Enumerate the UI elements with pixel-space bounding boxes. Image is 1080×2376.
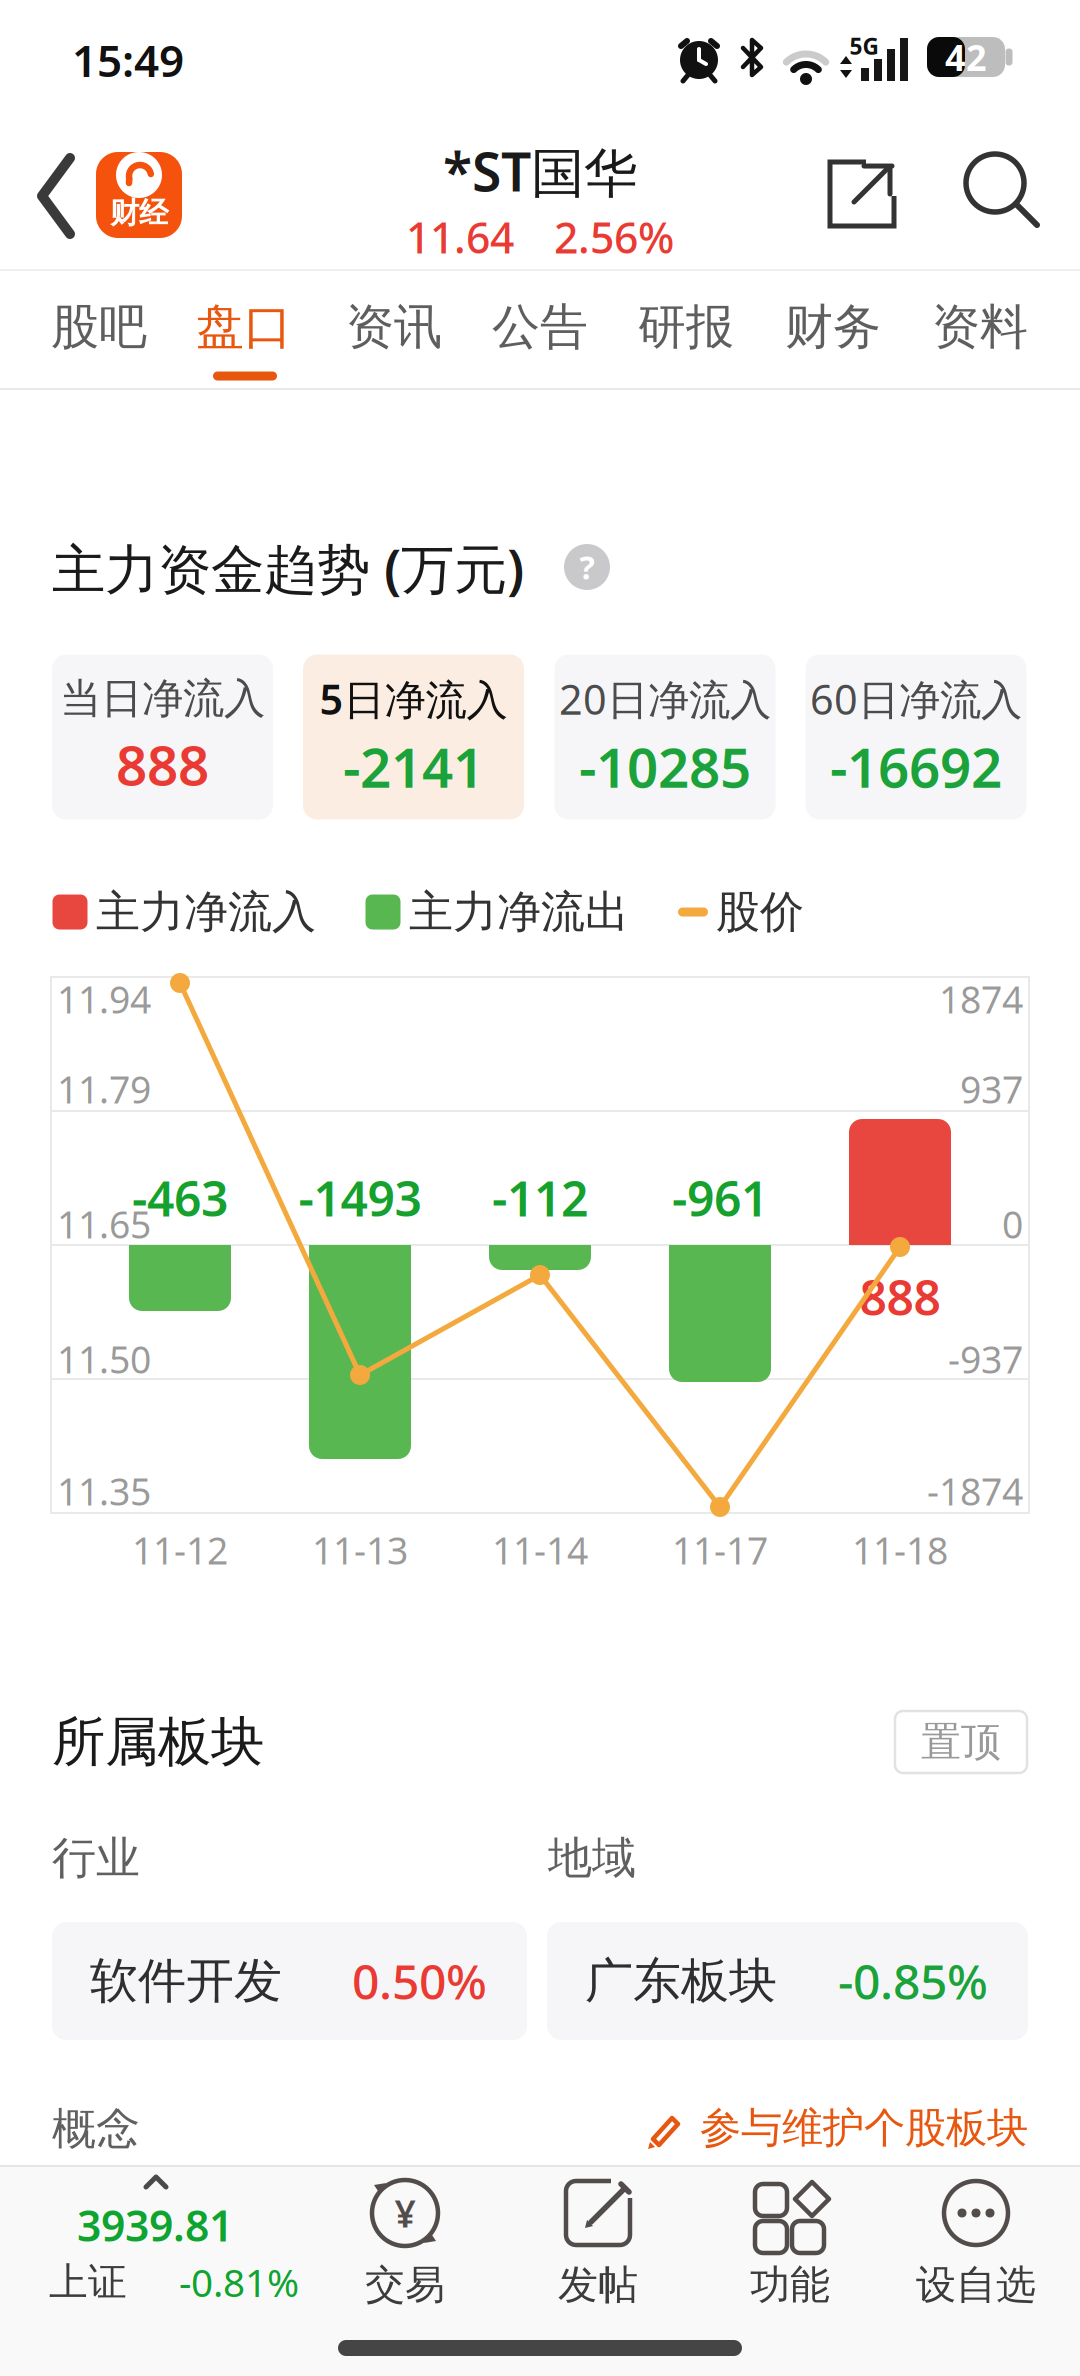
button[interactable]	[826, 159, 898, 231]
staticText: 1874	[939, 974, 1023, 1024]
staticText: 5G	[849, 31, 878, 61]
staticText: -961	[672, 1166, 768, 1230]
staticText: 主力净流出	[409, 885, 629, 939]
staticText: 主力净流入	[96, 885, 316, 939]
staticText: *ST国华	[443, 135, 637, 207]
staticText: 937	[960, 1064, 1023, 1114]
staticText: ?	[579, 546, 594, 588]
button[interactable]: 广东板块	[547, 1922, 1028, 2040]
staticText: 11.64	[406, 209, 514, 265]
button[interactable]: 参与维护个股板块	[588, 2103, 1028, 2153]
staticText: -16692	[830, 730, 1002, 803]
staticText: 3939.81	[77, 2197, 233, 2253]
staticText: 0	[1002, 1199, 1023, 1249]
staticText: -463	[132, 1166, 228, 1230]
staticText: 20日净流入	[559, 671, 771, 726]
staticText: 研报	[638, 297, 734, 356]
staticText: 60日净流入	[810, 671, 1022, 726]
staticText: 15:49	[72, 31, 184, 89]
staticText: 功能	[750, 2260, 830, 2309]
button[interactable]: 20日净流入	[554, 654, 775, 819]
button[interactable]	[961, 154, 1041, 234]
staticText: -1874	[927, 1466, 1023, 1516]
button[interactable]	[29, 153, 79, 239]
staticText: 11-12	[132, 1525, 228, 1575]
staticText: 财务	[785, 297, 881, 356]
staticText: 11.50	[57, 1334, 151, 1384]
staticText: 地域	[548, 1831, 636, 1885]
staticText: 参与维护个股板块	[700, 2103, 1028, 2153]
staticText: 资讯	[346, 297, 442, 356]
staticText: -10285	[579, 730, 751, 803]
button[interactable]: 资讯	[329, 272, 459, 382]
button[interactable]: ¥	[330, 2170, 480, 2310]
staticText: 主力资金趋势 (万元)	[52, 533, 524, 603]
button[interactable]: 发帖	[523, 2170, 673, 2310]
staticText: 11-13	[312, 1525, 408, 1575]
staticText: -1493	[298, 1166, 421, 1230]
staticText: 11.94	[57, 974, 151, 1024]
staticText: 0.50%	[352, 1949, 487, 2013]
staticText: 发帖	[558, 2260, 638, 2309]
staticText: 42	[945, 33, 987, 81]
staticText: 行业	[52, 1831, 140, 1885]
staticText: 2.56%	[554, 209, 674, 265]
staticText: 广东板块	[585, 1951, 777, 2010]
staticText: 11.79	[57, 1064, 151, 1114]
button[interactable]: ?	[564, 544, 610, 590]
button[interactable]: 财务	[768, 272, 898, 382]
button[interactable]: 资料	[915, 272, 1045, 382]
staticText: -0.81%	[179, 2256, 299, 2308]
staticText: 置顶	[921, 1717, 1001, 1766]
staticText: 所属板块	[52, 1709, 264, 1775]
staticText: 5日净流入	[319, 671, 507, 726]
staticText: -112	[492, 1166, 588, 1230]
staticText: 11.35	[57, 1466, 151, 1516]
button[interactable]: 5日净流入	[303, 654, 524, 819]
staticText: 交易	[365, 2260, 445, 2309]
staticText: 软件开发	[90, 1951, 282, 2010]
button[interactable]: 公告	[475, 272, 605, 382]
staticText: 概念	[52, 2102, 140, 2156]
button[interactable]: 60日净流入	[805, 654, 1026, 819]
staticText: 股价	[716, 885, 804, 939]
button[interactable]: 研报	[621, 272, 751, 382]
staticText: 11-18	[852, 1525, 948, 1575]
button[interactable]: 当日净流入	[52, 654, 273, 819]
staticText: -2141	[343, 730, 484, 803]
staticText: -0.85%	[838, 1949, 988, 2013]
staticText: ¥	[394, 2188, 415, 2238]
staticText: -937	[948, 1334, 1023, 1384]
staticText: 公告	[492, 297, 588, 356]
staticText: 11-17	[672, 1525, 768, 1575]
button[interactable]: 功能	[715, 2170, 865, 2310]
staticText: 11.65	[57, 1199, 151, 1249]
button[interactable]: 财经	[96, 152, 182, 238]
staticText: 上证	[49, 2258, 127, 2306]
button[interactable]: 盘口	[179, 272, 309, 382]
button[interactable]: 3939.81	[10, 2170, 310, 2315]
staticText: 财经	[110, 195, 168, 231]
staticText: 888	[859, 1265, 940, 1329]
staticText: 资料	[932, 297, 1028, 356]
staticText: 设自选	[916, 2260, 1036, 2309]
button[interactable]: 设自选	[901, 2170, 1051, 2310]
button[interactable]: 置顶	[895, 1711, 1027, 1773]
button[interactable]: 软件开发	[52, 1922, 527, 2040]
staticText: 888	[116, 728, 209, 801]
staticText: 股吧	[51, 297, 147, 356]
button[interactable]: 股吧	[34, 272, 164, 382]
staticText: 11-14	[492, 1525, 588, 1575]
staticText: 盘口	[196, 297, 292, 356]
staticText: 当日净流入	[60, 673, 265, 724]
